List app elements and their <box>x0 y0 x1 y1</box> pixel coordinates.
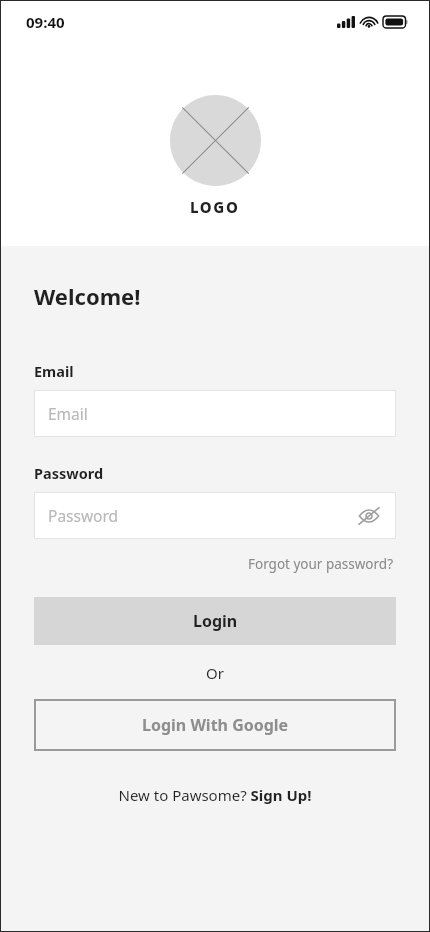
staticText: Login With Google <box>142 714 289 736</box>
staticText: 09:40 <box>26 12 65 32</box>
button[interactable]: Login <box>34 597 396 645</box>
staticText: Login <box>193 610 238 632</box>
staticText: New to Pawsome? Sign Up! <box>118 785 312 805</box>
button[interactable]: Forgot your password? <box>246 553 396 575</box>
button[interactable]: Email <box>34 390 396 437</box>
staticText: Welcome! <box>34 281 141 311</box>
staticText: LOGO <box>190 197 240 217</box>
staticText: Forgot your password? <box>248 555 394 573</box>
staticText: Email <box>34 361 74 381</box>
staticText: Password <box>34 463 104 483</box>
button[interactable]: Show password <box>356 503 382 529</box>
staticText: Email <box>48 403 88 424</box>
staticText: Password <box>48 505 119 526</box>
button[interactable]: Password <box>34 492 396 539</box>
button[interactable]: New to Pawsome? Sign Up! <box>114 783 316 807</box>
button[interactable]: Login With Google <box>34 699 396 751</box>
staticText: Or <box>206 663 224 683</box>
